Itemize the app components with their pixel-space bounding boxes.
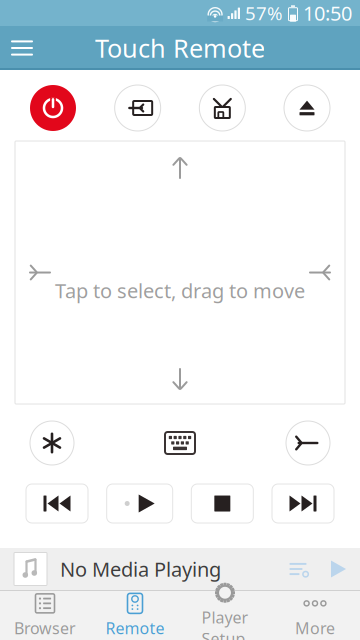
- button[interactable]: Next: [272, 484, 334, 523]
- button[interactable]: Menu: [0, 26, 44, 70]
- button[interactable]: Input source: [115, 85, 161, 131]
- button[interactable]: Power: [30, 85, 76, 131]
- staticText: Player Setup: [201, 607, 248, 640]
- button[interactable]: No Media Playing: [0, 548, 360, 590]
- staticText: Tap to select, drag to move: [55, 277, 305, 304]
- button[interactable]: Back: [286, 421, 330, 465]
- button[interactable]: Player Setup: [180, 591, 270, 639]
- staticText: 10:50: [303, 0, 352, 26]
- button[interactable]: Stop: [191, 484, 253, 523]
- button[interactable]: Remote: [90, 591, 180, 639]
- button[interactable]: Browser: [0, 591, 90, 639]
- button[interactable]: Keyboard: [158, 421, 202, 465]
- button[interactable]: Previous: [26, 484, 88, 523]
- staticText: 57%: [245, 1, 283, 25]
- staticText: Browser: [14, 617, 76, 639]
- staticText: Touch Remote: [95, 31, 265, 65]
- button[interactable]: Home: [199, 85, 245, 131]
- button[interactable]: Eject: [284, 85, 330, 131]
- button[interactable]: More: [270, 591, 360, 639]
- button[interactable]: Asterisk: [30, 421, 74, 465]
- button[interactable]: Play: [107, 484, 173, 523]
- staticText: No Media Playing: [60, 556, 221, 582]
- staticText: Remote: [105, 617, 164, 639]
- staticText: More: [295, 617, 335, 639]
